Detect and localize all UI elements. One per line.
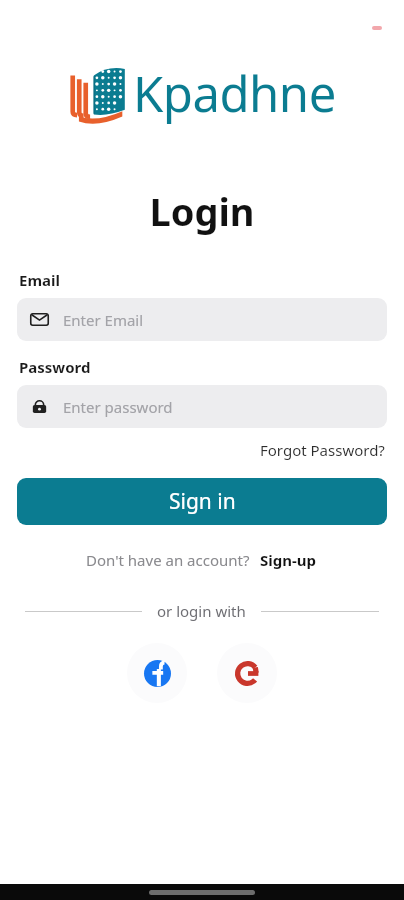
button[interactable]: Sign in with Facebook: [127, 643, 187, 703]
staticText: Enter Email: [63, 310, 144, 330]
staticText: Password: [19, 357, 91, 377]
staticText: Forgot Password?: [260, 440, 385, 460]
staticText: or login with: [157, 601, 246, 621]
button[interactable]: Sign in: [17, 478, 387, 525]
staticText: Sign-up: [260, 550, 317, 570]
button[interactable]: Sign-up: [258, 547, 319, 573]
staticText: Login: [0, 185, 404, 237]
staticText: Don't have an account?: [86, 550, 250, 570]
button[interactable]: Enter password: [17, 385, 387, 428]
staticText: Email: [19, 270, 60, 290]
staticText: Sign in: [169, 487, 236, 516]
button[interactable]: Sign in with Google: [217, 643, 277, 703]
staticText: Kpadhne: [133, 60, 336, 127]
button[interactable]: Enter Email: [17, 298, 387, 341]
staticText: Enter password: [63, 397, 173, 417]
button[interactable]: Forgot Password?: [258, 437, 387, 463]
